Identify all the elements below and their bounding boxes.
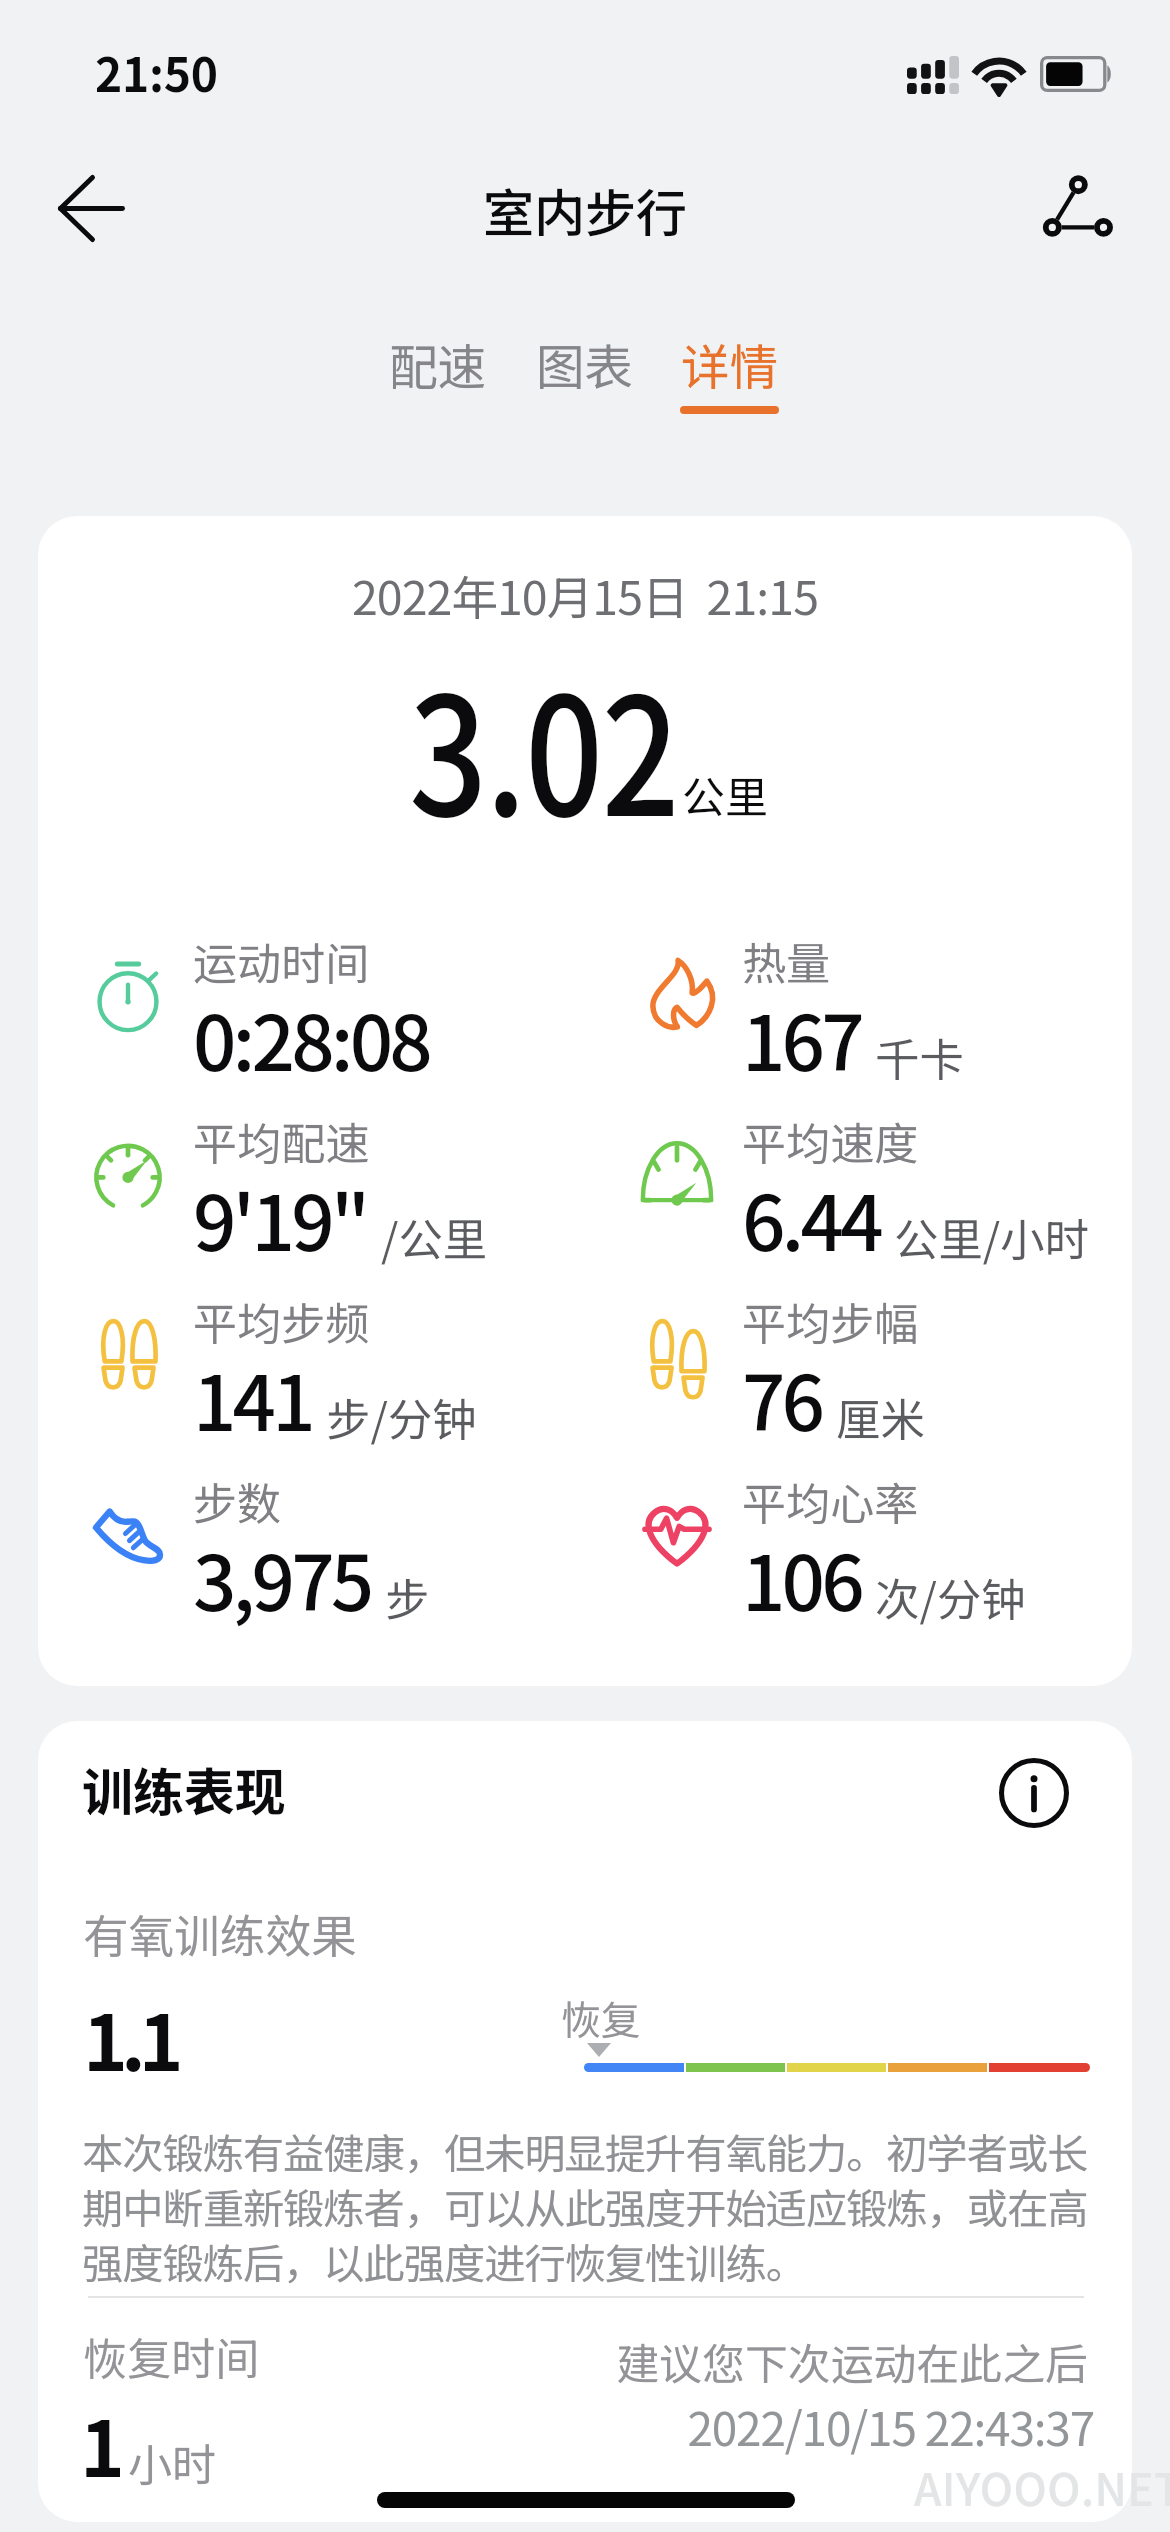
staticText: 平均步频 <box>193 1289 370 1353</box>
staticText: 106 <box>742 1523 861 1633</box>
staticText: 21:50 <box>95 38 218 105</box>
staticText: 图表 <box>511 329 658 399</box>
staticText: /公里 <box>381 1204 488 1268</box>
staticText: 6.44 <box>742 1163 880 1273</box>
button[interactable]: 图表 <box>511 324 658 394</box>
staticText: 141 <box>193 1343 312 1453</box>
button[interactable]: 详情 <box>656 324 803 394</box>
staticText: 本次锻炼有益健康，但未明显提升有氧能力。初学者或长期中断重新锻炼者，可以从此强度… <box>82 2121 1102 2291</box>
staticText: AIYOOO.NET <box>914 2455 1170 2519</box>
staticText: 恢复时间 <box>83 2324 260 2388</box>
staticText: 平均配速 <box>193 1109 370 1173</box>
staticText: 详情 <box>656 329 803 399</box>
staticText: 次/分钟 <box>875 1564 1026 1628</box>
staticText: 公里/小时 <box>894 1204 1089 1268</box>
staticText: 167 <box>742 983 861 1093</box>
staticText: 平均步幅 <box>742 1289 919 1353</box>
staticText: 3.02 <box>409 627 679 863</box>
staticText: 运动时间 <box>193 929 370 993</box>
button[interactable]: Share <box>1043 175 1112 237</box>
staticText: 有氧训练效果 <box>83 1900 357 1966</box>
staticText: 平均心率 <box>742 1469 919 1533</box>
button[interactable]: Back <box>58 175 125 242</box>
staticText: 公里 <box>682 763 768 825</box>
staticText: 步数 <box>193 1469 282 1533</box>
staticText: 76 <box>742 1343 822 1453</box>
staticText: 配速 <box>364 329 511 399</box>
staticText: 小时 <box>128 2430 217 2494</box>
staticText: 步/分钟 <box>326 1384 477 1448</box>
button[interactable]: 配速 <box>364 324 511 394</box>
staticText: 建议您下次运动在此之后 <box>38 2330 1088 2392</box>
button[interactable]: Info <box>999 1758 1069 1828</box>
staticText: 2022年10月15日 21:15 <box>38 561 1132 628</box>
staticText: 1.1 <box>83 1983 177 2093</box>
staticText: 热量 <box>742 929 831 993</box>
staticText: 2022/10/15 22:43:37 <box>38 2393 1094 2459</box>
staticText: 3,975 <box>193 1523 371 1633</box>
staticText: 训练表现 <box>82 1752 287 1826</box>
staticText: 1 <box>80 2389 118 2499</box>
staticText: 步 <box>385 1564 430 1628</box>
staticText: 室内步行 <box>483 173 688 247</box>
staticText: 平均速度 <box>742 1109 919 1173</box>
staticText: 厘米 <box>836 1384 925 1448</box>
staticText: 9'19" <box>193 1163 367 1273</box>
staticText: 千卡 <box>875 1024 964 1088</box>
staticText: 0:28:08 <box>193 983 429 1093</box>
staticText: 恢复 <box>561 1989 641 2047</box>
